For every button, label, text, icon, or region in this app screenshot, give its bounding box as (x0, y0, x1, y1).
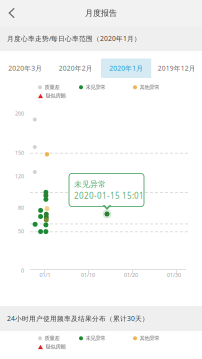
staticText: 疑似房颤 (45, 344, 65, 350)
button[interactable]: 2020年1月 (101, 51, 151, 79)
staticText: 质量差 (44, 335, 59, 342)
button[interactable]: 2019年12月 (151, 51, 202, 79)
button[interactable]: 2020年3月 (0, 51, 50, 79)
staticText: 0 (21, 267, 24, 274)
staticText: 未见异常 (74, 179, 106, 189)
staticText: 01/10 (81, 271, 95, 279)
staticText: 质量差 (44, 84, 59, 91)
button[interactable]: 2020年2月 (50, 51, 101, 79)
staticText: 01/1 (39, 271, 50, 279)
staticText: 2020年3月 (8, 64, 42, 73)
staticText: 01/30 (167, 271, 181, 279)
staticText: 120 (15, 173, 24, 180)
staticText: 未见异常 (85, 84, 105, 91)
staticText: 80 (18, 204, 24, 211)
staticText: 50 (18, 228, 24, 235)
staticText: 150 (15, 149, 24, 156)
staticText: 2020年1月 (109, 64, 143, 73)
staticText: 24小时用户使用频率及结果分布（累计30天） (7, 314, 149, 323)
staticText: 月度报告 (85, 8, 117, 18)
staticText: 2019年12月 (158, 64, 196, 73)
staticText: 其他异常 (139, 84, 159, 91)
staticText: 2020年2月 (59, 64, 93, 73)
staticText: 疑似房颤 (45, 93, 65, 99)
staticText: 月度心率走势/每日心率范围（2020年1月） (7, 34, 141, 43)
staticText: 未见异常 (85, 335, 105, 342)
staticText: 2020-01-15 15:01 (74, 190, 144, 201)
staticText: 其他异常 (139, 335, 159, 342)
staticText: 200 (15, 110, 24, 117)
button[interactable]: 返回 (0, 0, 24, 25)
staticText: 01/20 (124, 271, 138, 279)
